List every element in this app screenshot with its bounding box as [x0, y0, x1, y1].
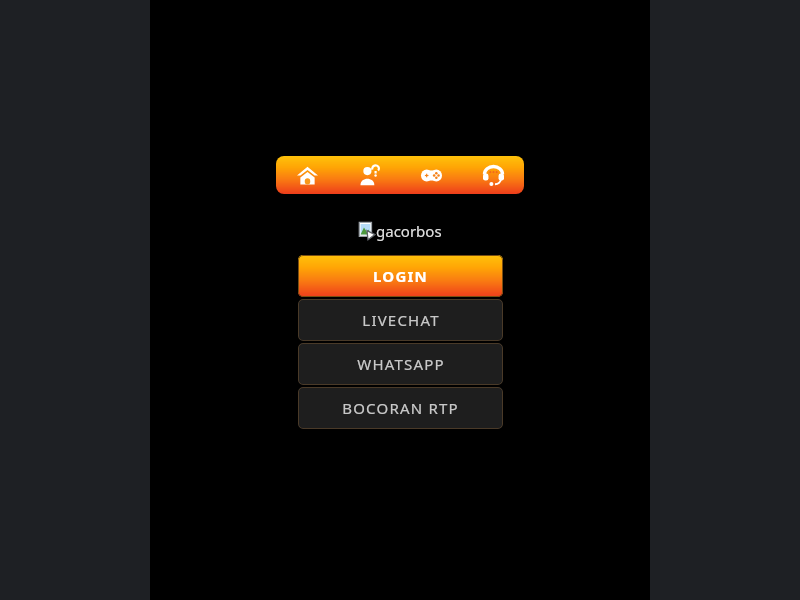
staticText: BOCORAN RTP [342, 398, 459, 418]
button[interactable]: Games [400, 156, 462, 194]
button[interactable]: Home [276, 156, 338, 194]
staticText: LOGIN [373, 266, 428, 286]
button[interactable]: LIVECHAT [298, 299, 503, 341]
button[interactable]: How to play [338, 156, 400, 194]
button[interactable]: LOGIN [298, 255, 503, 297]
staticText: WHATSAPP [357, 354, 445, 374]
button[interactable]: Live support [462, 156, 524, 194]
button[interactable]: BOCORAN RTP [298, 387, 503, 429]
button[interactable]: WHATSAPP [298, 343, 503, 385]
staticText: gacorbos [376, 221, 442, 241]
staticText: LIVECHAT [362, 310, 440, 330]
